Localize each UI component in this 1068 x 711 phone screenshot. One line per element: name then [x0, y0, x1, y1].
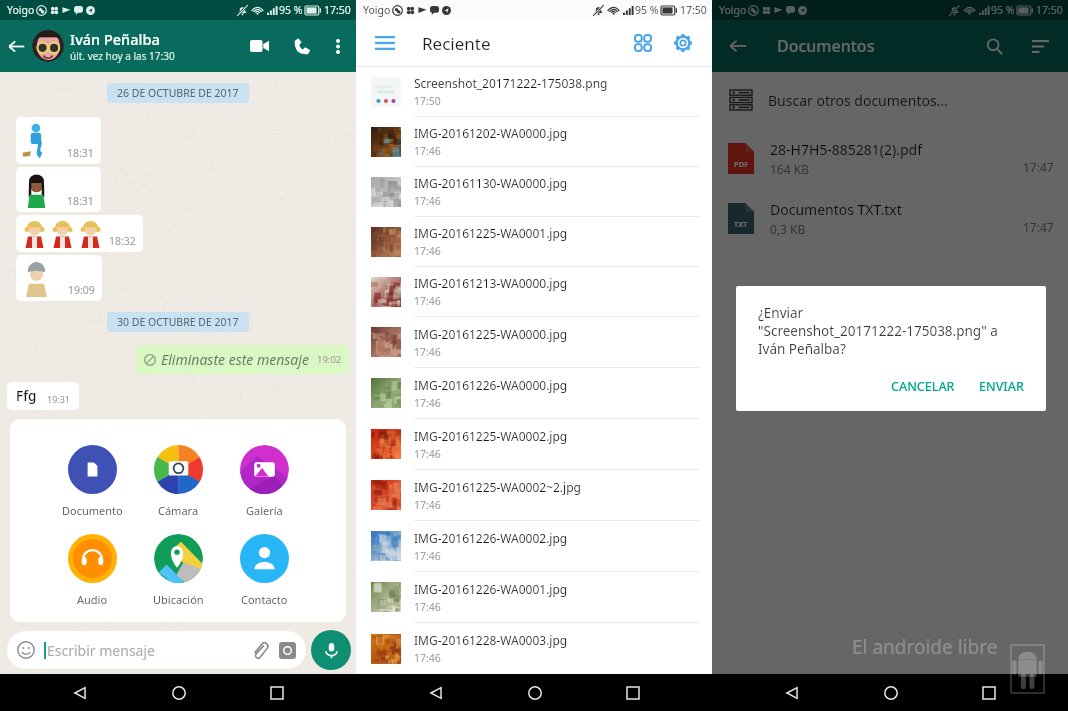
- staticText: Documentos TXT.txt: [770, 200, 902, 219]
- button[interactable]: IMG-20161228-WA0003.jpg: [356, 623, 712, 674]
- button[interactable]: Ffg: [7, 382, 79, 410]
- button[interactable]: Buscar otros documentos...: [712, 72, 1068, 128]
- staticText: Screenshot_20171222-175038.png: [414, 75, 608, 91]
- button[interactable]: More options: [324, 32, 352, 60]
- button[interactable]: Recents: [970, 674, 1007, 711]
- staticText: 18:31: [67, 146, 94, 160]
- button[interactable]: Recents: [614, 674, 651, 711]
- button[interactable]: Contacto: [221, 534, 307, 607]
- button[interactable]: Profile photo: [32, 30, 64, 62]
- button[interactable]: IMG-20161130-WA0000.jpg: [356, 167, 712, 217]
- staticText: 95 %: [635, 3, 659, 17]
- staticText: Yoigo: [7, 3, 35, 17]
- button[interactable]: Menu: [370, 28, 400, 58]
- button[interactable]: Voice message: [311, 630, 351, 670]
- button[interactable]: IMG-20161226-WA0002.jpg: [356, 521, 712, 572]
- staticText: 17:46: [414, 244, 441, 258]
- staticText: 30 DE OCTUBRE DE 2017: [117, 315, 239, 329]
- button[interactable]: Home: [516, 674, 553, 711]
- button[interactable]: Emoji: [7, 631, 306, 669]
- button[interactable]: IMG-20161225-WA0000.jpg: [356, 317, 712, 368]
- button[interactable]: Audio: [49, 534, 135, 607]
- button[interactable]: IMG-20161226-WA0000.jpg: [356, 368, 712, 419]
- button[interactable]: Recents: [258, 674, 295, 711]
- staticText: Buscar otros documentos...: [768, 91, 948, 110]
- button[interactable]: Home: [872, 674, 909, 711]
- button[interactable]: PDF: [712, 128, 1068, 188]
- button[interactable]: 18:32: [16, 215, 143, 252]
- button[interactable]: Back: [773, 674, 810, 711]
- staticText: 17:46: [414, 549, 441, 563]
- staticText: 17:46: [414, 345, 441, 359]
- button[interactable]: IMG-20161226-WA0001.jpg: [356, 572, 712, 623]
- button[interactable]: Grid view: [628, 28, 658, 58]
- staticText: TXT: [734, 219, 748, 229]
- button[interactable]: Back: [417, 674, 454, 711]
- button[interactable]: 18:31: [16, 117, 101, 164]
- button[interactable]: Emoji: [17, 641, 35, 659]
- button[interactable]: CANCELAR: [883, 370, 963, 403]
- staticText: 17:50: [1036, 3, 1063, 17]
- staticText: CANCELAR: [891, 378, 955, 395]
- staticText: 19:31: [47, 393, 71, 405]
- staticText: Ubicación: [153, 592, 204, 607]
- button[interactable]: Call: [285, 29, 319, 63]
- button[interactable]: Documento: [49, 445, 135, 518]
- staticText: 95 %: [991, 3, 1015, 17]
- staticText: 26 DE OCTUBRE DE 2017: [117, 86, 239, 100]
- staticText: IMG-20161213-WA0000.jpg: [414, 275, 568, 291]
- staticText: 17:46: [414, 447, 441, 461]
- button[interactable]: IMG-20161202-WA0000.jpg: [356, 117, 712, 167]
- button[interactable]: Cámara: [135, 445, 221, 518]
- button[interactable]: Galería: [221, 445, 307, 518]
- button[interactable]: Eliminaste este mensaje: [136, 345, 349, 374]
- button[interactable]: Back: [61, 674, 98, 711]
- button[interactable]: IMG-20161213-WA0000.jpg: [356, 267, 712, 317]
- button[interactable]: 18:31: [16, 167, 101, 212]
- button[interactable]: Attach: [251, 642, 268, 659]
- staticText: 17:47: [1023, 159, 1054, 175]
- button[interactable]: IMG-20161225-WA0002.jpg: [356, 419, 712, 470]
- staticText: 18:32: [109, 234, 136, 248]
- staticText: ¿Enviar "Screenshot_20171222-175038.png"…: [758, 304, 998, 358]
- staticText: Documento: [62, 503, 123, 518]
- staticText: PDF: [734, 159, 749, 169]
- staticText: IMG-20161225-WA0001.jpg: [414, 225, 568, 241]
- button[interactable]: Ubicación: [135, 534, 221, 607]
- staticText: 17:46: [414, 144, 441, 158]
- button[interactable]: Back: [722, 30, 754, 62]
- button[interactable]: Search: [978, 30, 1010, 62]
- staticText: Escribir mensaje: [47, 641, 155, 660]
- staticText: Yoigo: [363, 3, 391, 17]
- staticText: Eliminaste este mensaje: [161, 350, 309, 369]
- staticText: últ. vez hoy a las 17:30: [70, 49, 175, 63]
- staticText: El androide libre: [852, 634, 998, 660]
- button[interactable]: Back: [1, 31, 32, 62]
- button[interactable]: Camera: [279, 642, 296, 659]
- staticText: Galería: [246, 503, 283, 518]
- staticText: IMG-20161130-WA0000.jpg: [414, 175, 568, 191]
- staticText: Documentos: [777, 35, 875, 57]
- button[interactable]: IMG-20161225-WA0002~2.jpg: [356, 470, 712, 521]
- staticText: 19:02: [317, 353, 342, 366]
- staticText: 17:50: [324, 3, 351, 17]
- staticText: Audio: [77, 592, 108, 607]
- staticText: 17:46: [414, 194, 441, 208]
- staticText: IMG-20161226-WA0000.jpg: [414, 377, 568, 393]
- button[interactable]: IMG-20161225-WA0001.jpg: [356, 217, 712, 267]
- staticText: 17:50: [414, 94, 441, 108]
- staticText: 19:09: [68, 283, 95, 297]
- button[interactable]: Home: [160, 674, 197, 711]
- button[interactable]: Sort: [1024, 30, 1056, 62]
- staticText: 17:46: [414, 396, 441, 410]
- button[interactable]: Settings: [668, 28, 698, 58]
- button[interactable]: TXT: [712, 188, 1068, 248]
- button[interactable]: Video call: [242, 29, 276, 63]
- staticText: IMG-20161225-WA0000.jpg: [414, 326, 568, 342]
- button[interactable]: ENVIAR: [971, 370, 1032, 403]
- staticText: 17:46: [414, 294, 441, 308]
- button[interactable]: Screenshot_20171222-175038.png: [356, 67, 712, 117]
- staticText: Yoigo: [719, 3, 747, 17]
- staticText: Reciente: [422, 32, 491, 55]
- button[interactable]: 19:09: [16, 255, 102, 301]
